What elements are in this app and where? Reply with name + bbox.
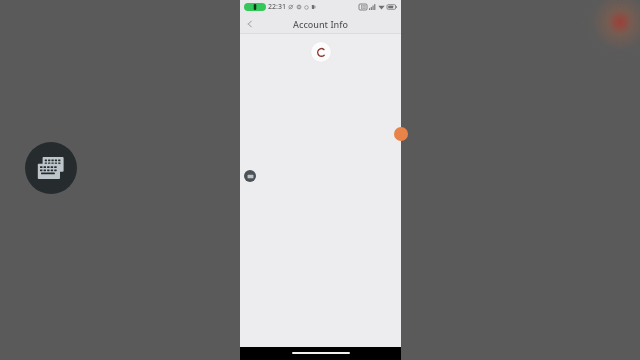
button[interactable]: Floating action [394, 127, 408, 141]
button[interactable]: Assistant [244, 170, 256, 182]
staticText: Account Info [293, 18, 348, 30]
staticText: 22:31 [268, 2, 286, 12]
button[interactable]: Switch keyboard [25, 142, 77, 194]
button[interactable]: Back [240, 14, 260, 34]
